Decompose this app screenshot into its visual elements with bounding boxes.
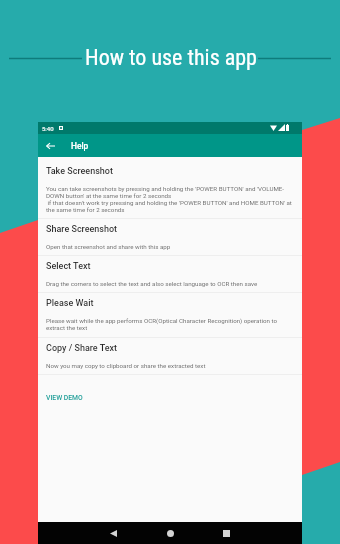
staticText: You can take screenshots by pressing and… bbox=[46, 185, 294, 213]
staticText: Share Screenshot bbox=[46, 224, 118, 235]
staticText: Select Text bbox=[46, 261, 91, 272]
staticText: Now you may copy to clipboard or share t… bbox=[46, 362, 206, 369]
button[interactable]: Share Screenshot bbox=[38, 219, 302, 255]
staticText: Please wait while the app performs OCR(O… bbox=[46, 317, 294, 331]
staticText: Open that screenshot and share with this… bbox=[46, 243, 171, 250]
button[interactable]: Take Screenshot bbox=[38, 161, 302, 218]
button[interactable]: Select Text bbox=[38, 256, 302, 292]
button[interactable]: Back bbox=[41, 137, 59, 155]
staticText: How to use this app bbox=[85, 45, 257, 71]
staticText: Please Wait bbox=[46, 298, 94, 309]
button[interactable]: Please Wait bbox=[38, 293, 302, 337]
button[interactable]: Home bbox=[161, 524, 179, 542]
staticText: 5:40 bbox=[42, 125, 54, 132]
staticText: Copy / Share Text bbox=[46, 343, 118, 354]
staticText: Take Screenshot bbox=[46, 166, 113, 177]
button[interactable]: Recents bbox=[217, 524, 235, 542]
button[interactable]: Back bbox=[104, 524, 122, 542]
staticText: VIEW DEMO bbox=[46, 394, 83, 402]
staticText: Help bbox=[71, 141, 89, 151]
button[interactable]: VIEW DEMO bbox=[46, 393, 83, 403]
staticText: Drag the corners to select the text and … bbox=[46, 280, 258, 287]
button[interactable]: Copy / Share Text bbox=[38, 338, 302, 374]
